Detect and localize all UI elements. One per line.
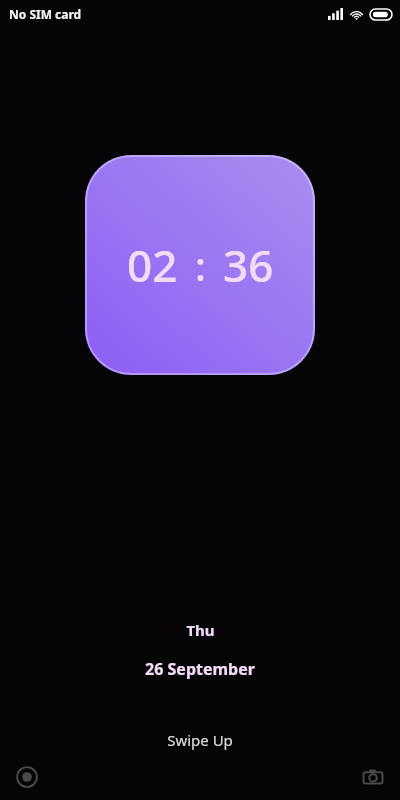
- staticText: 02: [127, 235, 178, 295]
- button[interactable]: Camera: [353, 757, 393, 797]
- staticText: 36: [223, 235, 274, 295]
- staticText: :: [195, 238, 206, 292]
- button[interactable]: Swipe Up: [0, 730, 400, 750]
- staticText: No SIM card: [9, 6, 82, 22]
- button[interactable]: 02: [85, 155, 315, 375]
- staticText: 26 September: [145, 658, 255, 680]
- staticText: Swipe Up: [167, 730, 233, 750]
- staticText: Thu: [186, 620, 215, 640]
- button[interactable]: Flashlight: [7, 757, 47, 797]
